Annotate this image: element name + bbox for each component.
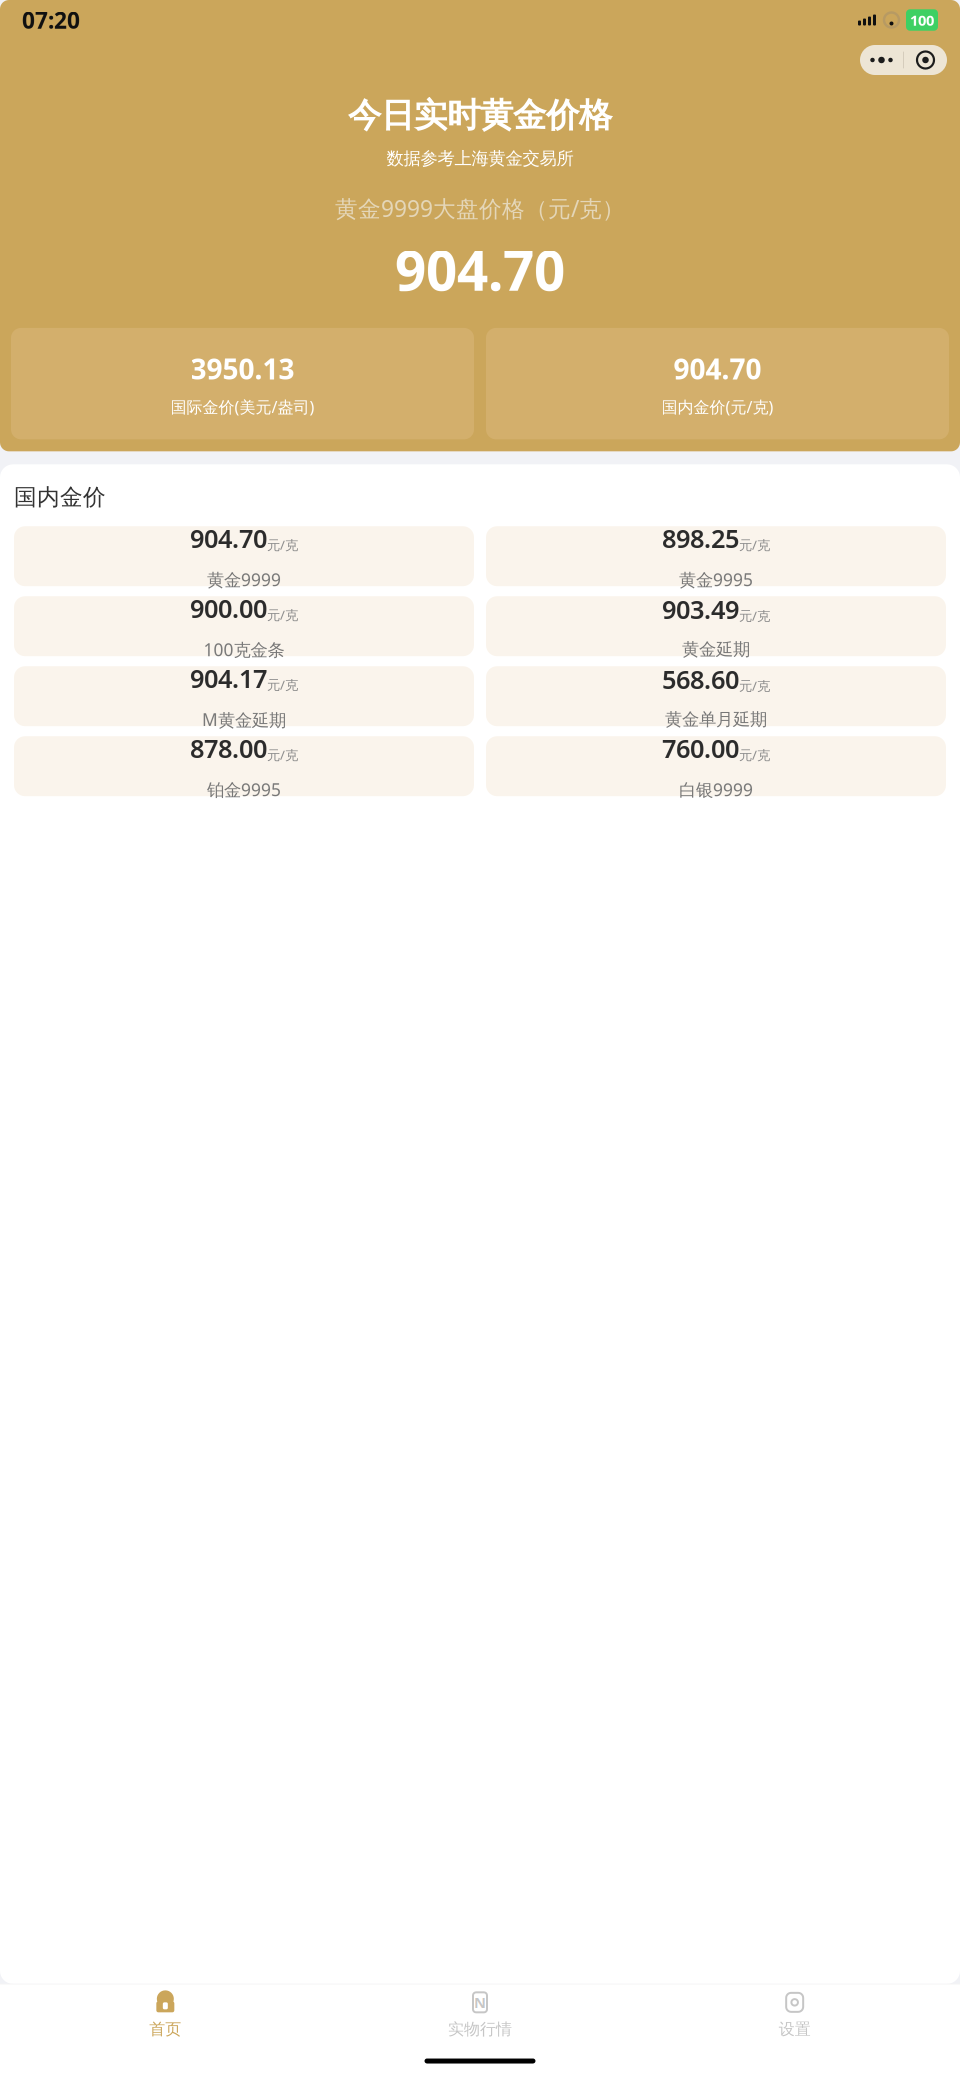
button[interactable]: 904.70 bbox=[14, 526, 474, 586]
staticText: 黄金9995 bbox=[679, 568, 753, 591]
staticText: 元/克 bbox=[739, 536, 770, 553]
staticText: 878.00 bbox=[190, 731, 267, 765]
staticText: 国内金价(元/克) bbox=[661, 396, 773, 417]
staticText: 黄金9999大盘价格（元/克） bbox=[335, 193, 625, 223]
staticText: 760.00 bbox=[662, 731, 739, 765]
staticText: 904.17 bbox=[190, 661, 267, 695]
staticText: 铂金9995 bbox=[207, 778, 281, 801]
staticText: 元/克 bbox=[267, 746, 298, 763]
staticText: 100克金条 bbox=[203, 638, 284, 661]
staticText: 实物行情 bbox=[448, 2019, 512, 2039]
staticText: 07:20 bbox=[22, 5, 80, 35]
staticText: 国际金价(美元/盎司) bbox=[170, 396, 314, 417]
staticText: 100 bbox=[910, 10, 934, 30]
staticText: 元/克 bbox=[267, 676, 298, 693]
button[interactable]: 900.00 bbox=[14, 596, 474, 656]
staticText: 904.70 bbox=[395, 233, 565, 306]
button[interactable]: More bbox=[860, 45, 903, 75]
staticText: 898.25 bbox=[662, 521, 739, 555]
button[interactable]: 首页 bbox=[8, 1984, 323, 2044]
staticText: 元/克 bbox=[267, 536, 298, 553]
staticText: 900.00 bbox=[190, 591, 267, 625]
staticText: 国内金价 bbox=[14, 483, 106, 511]
staticText: 黄金单月延期 bbox=[665, 709, 767, 730]
staticText: 568.60 bbox=[662, 662, 739, 696]
button[interactable]: 898.25 bbox=[486, 526, 946, 586]
button[interactable]: 设置 bbox=[637, 1984, 952, 2044]
button[interactable]: N bbox=[323, 1984, 637, 2044]
staticText: 元/克 bbox=[739, 677, 770, 694]
button[interactable]: Close bbox=[904, 45, 947, 75]
staticText: 黄金9999 bbox=[207, 568, 281, 591]
staticText: 903.49 bbox=[662, 592, 739, 626]
staticText: 元/克 bbox=[739, 746, 770, 763]
button[interactable]: 568.60 bbox=[486, 666, 946, 726]
staticText: 今日实时黄金价格 bbox=[348, 95, 612, 136]
button[interactable]: 878.00 bbox=[14, 736, 474, 796]
button[interactable]: 760.00 bbox=[486, 736, 946, 796]
staticText: 黄金延期 bbox=[682, 639, 750, 660]
staticText: 白银9999 bbox=[679, 778, 753, 801]
staticText: 904.70 bbox=[190, 521, 267, 555]
staticText: M黄金延期 bbox=[202, 708, 286, 731]
staticText: 数据参考上海黄金交易所 bbox=[386, 148, 573, 169]
staticText: 首页 bbox=[149, 2019, 181, 2039]
button[interactable]: 904.17 bbox=[14, 666, 474, 726]
staticText: 元/克 bbox=[267, 606, 298, 623]
button[interactable]: 903.49 bbox=[486, 596, 946, 656]
staticText: 元/克 bbox=[739, 607, 770, 624]
staticText: N bbox=[474, 1993, 486, 2012]
staticText: 设置 bbox=[779, 2019, 811, 2039]
staticText: 3950.13 bbox=[190, 350, 294, 387]
staticText: 904.70 bbox=[673, 350, 761, 387]
